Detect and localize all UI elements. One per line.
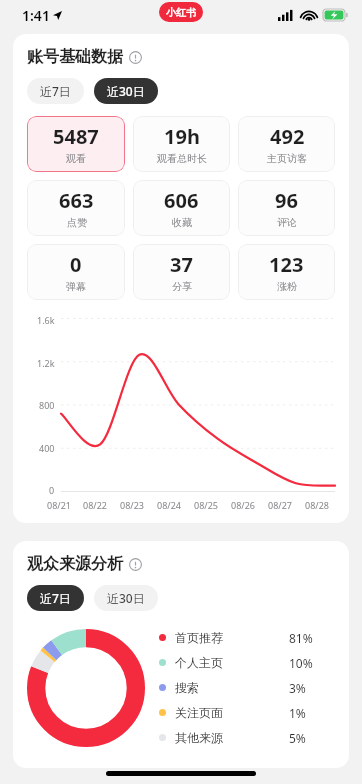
staticText: 5%	[289, 730, 306, 746]
staticText: 663	[59, 187, 94, 214]
staticText: 1.6k	[37, 314, 55, 326]
staticText: 近30日	[107, 83, 145, 99]
button[interactable]: 近30日	[94, 585, 158, 611]
staticText: 492	[270, 123, 305, 150]
staticText: 81%	[289, 630, 313, 646]
button[interactable]: 5487	[27, 116, 125, 172]
staticText: 首页推荐	[175, 630, 223, 645]
staticText: 08/24	[157, 499, 181, 511]
staticText: 账号基础数据	[27, 47, 123, 67]
staticText: 08/28	[305, 499, 329, 511]
button[interactable]: 19h	[133, 116, 230, 172]
button[interactable]: 0	[27, 244, 125, 300]
staticText: 800	[39, 399, 55, 411]
staticText: 点赞	[67, 216, 87, 229]
staticText: 涨粉	[277, 280, 297, 293]
staticText: 400	[39, 442, 55, 454]
staticText: 小红书	[166, 6, 196, 19]
button[interactable]: 信息	[129, 51, 142, 64]
staticText: 08/26	[231, 499, 255, 511]
staticText: 5487	[53, 123, 99, 150]
staticText: 3%	[289, 680, 306, 696]
button[interactable]: 606	[133, 180, 230, 236]
staticText: 1.2k	[37, 357, 55, 369]
staticText: 0	[70, 251, 82, 278]
staticText: 观看	[66, 152, 86, 165]
staticText: 37	[170, 251, 193, 278]
staticText: 08/22	[83, 499, 107, 511]
staticText: 主页访客	[267, 152, 307, 165]
staticText: 近7日	[40, 83, 71, 99]
staticText: 评论	[277, 216, 297, 229]
button[interactable]: 信息	[129, 558, 142, 571]
staticText: 606	[164, 187, 199, 214]
staticText: 个人主页	[175, 655, 223, 670]
staticText: 近30日	[107, 590, 145, 606]
staticText: 0	[49, 484, 55, 496]
staticText: 08/23	[120, 499, 144, 511]
staticText: 观众来源分析	[27, 554, 123, 574]
button[interactable]: 123	[238, 244, 335, 300]
staticText: 1:41	[22, 6, 50, 25]
staticText: 10%	[289, 655, 313, 671]
staticText: 08/27	[268, 499, 292, 511]
staticText: 近7日	[40, 590, 71, 606]
staticText: 08/21	[47, 499, 71, 511]
button[interactable]: 近7日	[27, 78, 84, 104]
button[interactable]: 近7日	[27, 585, 84, 611]
button[interactable]: 492	[238, 116, 335, 172]
staticText: 分享	[172, 280, 192, 293]
staticText: 弹幕	[66, 280, 86, 293]
staticText: 08/25	[194, 499, 218, 511]
staticText: 123	[269, 251, 304, 278]
staticText: 观看总时长	[157, 152, 207, 165]
button[interactable]: 近30日	[94, 78, 158, 104]
button[interactable]: 96	[238, 180, 335, 236]
staticText: 1%	[289, 705, 306, 721]
staticText: 搜索	[175, 680, 199, 695]
staticText: 96	[275, 187, 298, 214]
button[interactable]: 663	[27, 180, 125, 236]
staticText: 19h	[164, 123, 200, 150]
button[interactable]: 37	[133, 244, 230, 300]
staticText: 关注页面	[175, 705, 223, 720]
staticText: 收藏	[172, 216, 192, 229]
staticText: 其他来源	[175, 730, 223, 745]
